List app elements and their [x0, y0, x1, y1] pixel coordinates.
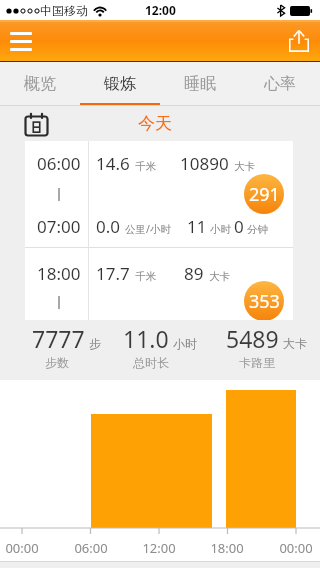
staticText: 大卡	[234, 160, 255, 173]
staticText: 06:00	[66, 539, 116, 557]
staticText: 89	[184, 262, 204, 285]
staticText: 小时	[173, 336, 197, 351]
button[interactable]	[25, 113, 48, 137]
staticText: 睡眠	[184, 74, 216, 94]
staticText: 5489	[226, 323, 279, 354]
staticText: 0	[234, 215, 244, 238]
staticText: 步	[89, 336, 101, 351]
staticText: 291	[249, 182, 280, 207]
staticText: 公里/小时	[125, 222, 171, 236]
staticText: 分钟	[247, 223, 268, 236]
staticText: 18:00	[37, 262, 81, 285]
staticText: 千米	[135, 270, 156, 283]
staticText: 7777	[32, 323, 85, 354]
staticText: 概览	[24, 74, 56, 94]
staticText: 千米	[135, 160, 156, 173]
button[interactable]: 概览	[0, 62, 80, 106]
staticText: 0.0	[96, 215, 121, 238]
staticText: 今天	[138, 113, 172, 134]
staticText: 12:00	[134, 539, 184, 557]
staticText: 步数	[45, 355, 69, 370]
staticText: 00:00	[271, 539, 320, 557]
staticText: 07:00	[37, 215, 81, 238]
button[interactable]	[10, 32, 32, 51]
staticText: 中国移动	[40, 3, 88, 18]
staticText: 锻炼	[104, 74, 136, 94]
staticText: 总时长	[133, 355, 169, 370]
button[interactable]: 锻炼	[80, 62, 160, 106]
staticText: 10890	[180, 152, 229, 175]
staticText: 353	[249, 289, 280, 314]
staticText: 18:00	[202, 539, 252, 557]
staticText: 心率	[264, 74, 296, 94]
button[interactable]: 心率	[240, 62, 320, 106]
staticText: 14.6	[96, 152, 130, 175]
button[interactable]	[287, 28, 311, 54]
button[interactable]: 睡眠	[160, 62, 240, 106]
staticText: 大卡	[209, 270, 230, 283]
staticText: 17.7	[96, 262, 130, 285]
staticText: 00:00	[0, 539, 47, 557]
staticText: 11.0	[123, 323, 169, 354]
staticText: 卡路里	[239, 355, 275, 370]
staticText: 大卡	[283, 336, 307, 351]
staticText: 11	[187, 215, 207, 238]
button[interactable]: 今天	[143, 113, 177, 134]
staticText: 小时	[210, 223, 231, 236]
staticText: 12:00	[145, 2, 176, 18]
staticText: 06:00	[37, 152, 81, 175]
